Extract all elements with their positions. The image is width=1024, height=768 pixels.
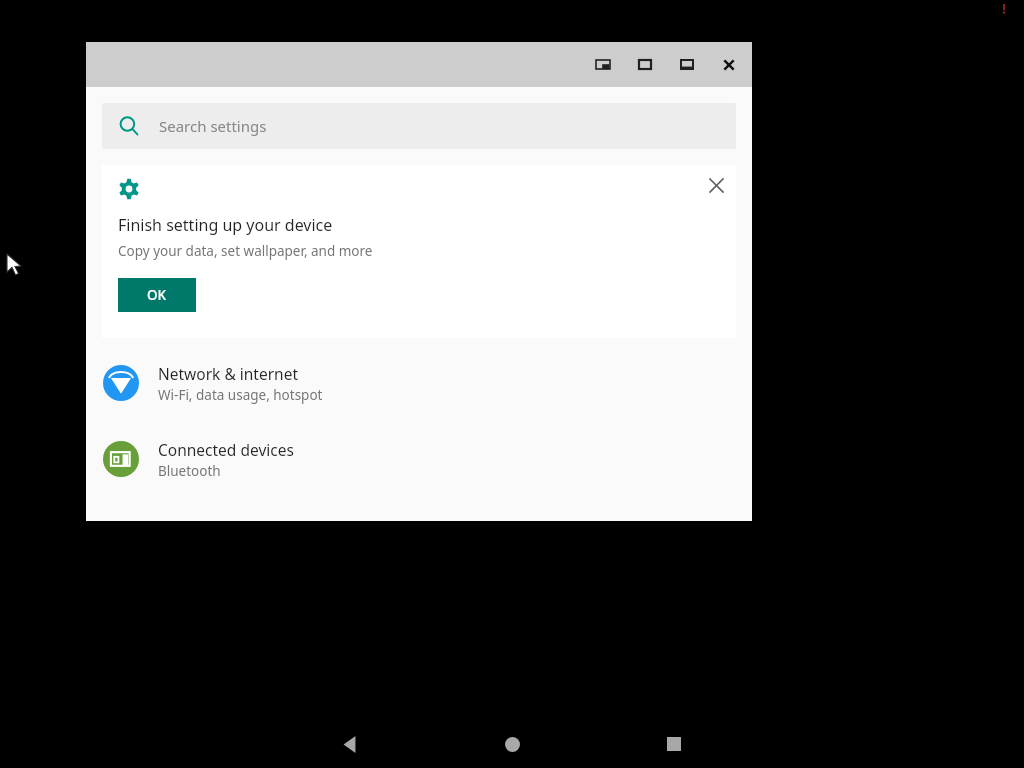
button[interactable]: Back xyxy=(325,720,373,768)
button[interactable]: Close xyxy=(714,50,744,80)
button[interactable]: Search settings xyxy=(102,103,736,149)
staticText: Network & internet xyxy=(158,363,298,384)
button[interactable]: OK xyxy=(118,278,196,312)
button[interactable]: Dismiss suggestion xyxy=(702,171,730,199)
button[interactable]: Network & internet xyxy=(86,358,752,408)
button[interactable]: Home xyxy=(488,720,536,768)
staticText: Bluetooth xyxy=(158,462,221,480)
staticText: Wi-Fi, data usage, hotspot xyxy=(158,386,323,404)
button[interactable]: Minimize xyxy=(674,52,700,78)
staticText: Copy your data, set wallpaper, and more xyxy=(118,242,373,260)
button[interactable]: Snapshot xyxy=(590,52,616,78)
staticText: OK xyxy=(147,286,167,304)
staticText: Search settings xyxy=(159,116,267,136)
button[interactable]: Restore xyxy=(632,52,658,78)
staticText: Connected devices xyxy=(158,439,294,460)
button[interactable]: Recent apps xyxy=(650,720,698,768)
staticText: Finish setting up your device xyxy=(118,214,333,236)
button[interactable]: Connected devices xyxy=(86,434,752,484)
button[interactable]: Finish setting up your device xyxy=(102,165,736,338)
